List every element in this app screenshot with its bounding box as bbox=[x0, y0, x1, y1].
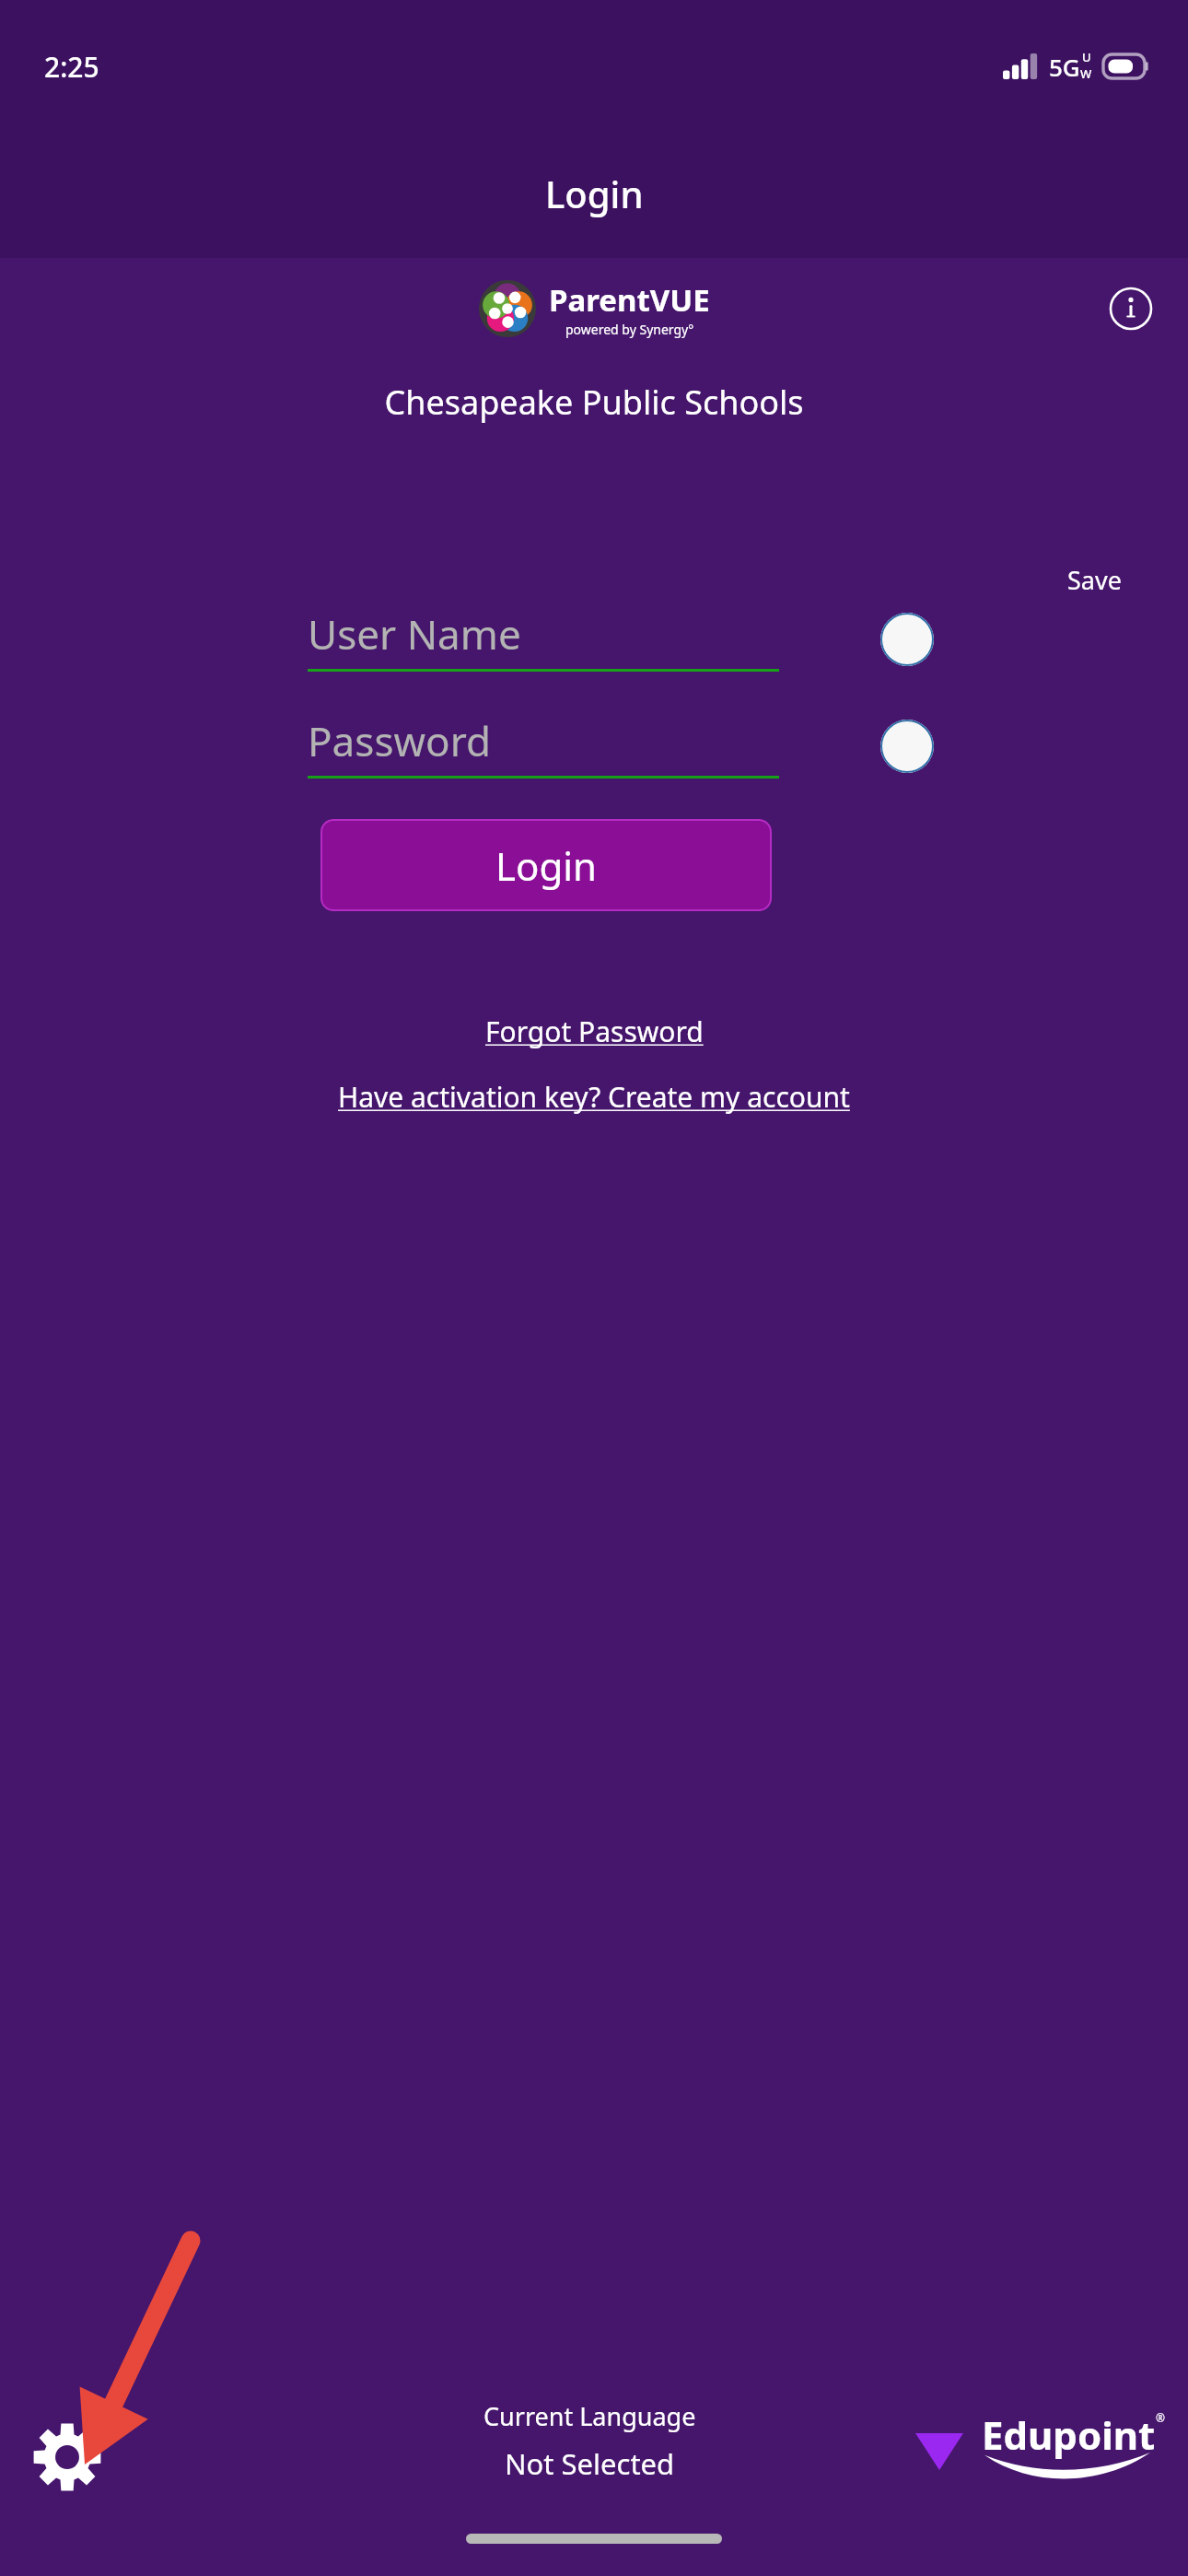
button[interactable]: Save toggle bbox=[880, 720, 934, 773]
staticText: U bbox=[1082, 49, 1091, 65]
staticText: User Name bbox=[308, 606, 521, 662]
staticText: Save bbox=[1067, 563, 1122, 597]
staticText: ® bbox=[1156, 2410, 1165, 2425]
staticText: Forgot Password bbox=[485, 1013, 704, 1050]
button[interactable]: Have activation key? Create my account bbox=[0, 1078, 1188, 1116]
staticText: W bbox=[1080, 65, 1092, 82]
button[interactable]: User Name bbox=[308, 606, 779, 672]
staticText: Login bbox=[545, 169, 644, 218]
button[interactable]: Edupoint bbox=[976, 2401, 1170, 2502]
button[interactable]: Information bbox=[1105, 283, 1157, 334]
staticText: Password bbox=[308, 713, 492, 768]
staticText: Have activation key? Create my account bbox=[338, 1078, 850, 1116]
staticText: 5G bbox=[1049, 51, 1080, 83]
staticText: Not Selected bbox=[505, 2444, 675, 2483]
button[interactable]: Password bbox=[308, 713, 779, 779]
button[interactable]: Select language bbox=[910, 2422, 969, 2481]
staticText: Edupoint bbox=[982, 2408, 1156, 2461]
staticText: ParentVUE bbox=[549, 279, 710, 321]
staticText: Current Language bbox=[483, 2399, 696, 2433]
button[interactable]: Save toggle bbox=[880, 613, 934, 666]
staticText: Login bbox=[495, 839, 598, 892]
staticText: powered by Synergy° bbox=[565, 321, 694, 338]
button[interactable]: Forgot Password bbox=[0, 1013, 1188, 1050]
staticText: 2:25 bbox=[44, 48, 99, 86]
button[interactable]: Login bbox=[320, 819, 772, 911]
staticText: Chesapeake Public Schools bbox=[0, 380, 1188, 425]
button[interactable]: Settings bbox=[28, 2418, 107, 2497]
